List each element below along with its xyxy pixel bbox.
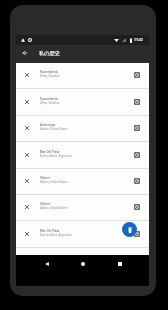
button[interactable]: Remove entry bbox=[16, 89, 149, 115]
button[interactable]: Remove entry bbox=[16, 194, 149, 220]
button[interactable]: Remove entry bbox=[21, 201, 32, 212]
button[interactable]: Time at location bbox=[134, 152, 140, 158]
staticText: 11:22 bbox=[134, 37, 143, 42]
button[interactable]: Time at location bbox=[134, 99, 140, 105]
button[interactable]: Remove entry bbox=[21, 69, 32, 80]
staticText: Zilina, Slovakia bbox=[40, 74, 60, 78]
staticText: Zilina, Slovakia bbox=[40, 101, 60, 105]
staticText: Palmer bbox=[40, 176, 51, 180]
staticText: Ruzomberok bbox=[40, 70, 59, 74]
button[interactable]: Time at location bbox=[134, 125, 140, 131]
staticText: Alaska, United States bbox=[40, 127, 68, 131]
button[interactable]: Remove entry bbox=[21, 122, 32, 133]
button[interactable]: Time at location bbox=[134, 231, 140, 237]
button[interactable]: Remove entry bbox=[16, 168, 149, 194]
button[interactable]: Remove entry bbox=[16, 115, 149, 141]
button[interactable]: Delete all history bbox=[122, 222, 137, 237]
staticText: Ruzomberok bbox=[40, 97, 59, 101]
button[interactable]: Remove entry bbox=[21, 228, 32, 239]
button[interactable]: Remove entry bbox=[21, 96, 32, 107]
button[interactable]: Remove entry bbox=[16, 247, 149, 255]
staticText: Anchorage bbox=[40, 123, 56, 127]
button[interactable]: Home bbox=[77, 258, 88, 269]
staticText: Buenos Aires, Argentina bbox=[40, 233, 72, 237]
button[interactable]: Time at location bbox=[134, 72, 140, 78]
button[interactable]: Back bbox=[19, 47, 31, 59]
staticText: Mar Del Plata bbox=[40, 229, 60, 233]
staticText: Palmer bbox=[40, 202, 51, 206]
button[interactable]: Remove entry bbox=[16, 62, 149, 88]
button[interactable]: Remove entry bbox=[16, 142, 149, 168]
button[interactable]: Remove entry bbox=[16, 221, 149, 247]
staticText: Mar Del Plata bbox=[40, 150, 60, 154]
button[interactable]: Recent apps bbox=[114, 258, 125, 269]
button[interactable]: Remove entry bbox=[21, 149, 32, 160]
button[interactable]: Time at location bbox=[134, 204, 140, 210]
button[interactable]: Remove entry bbox=[21, 175, 32, 186]
staticText: Buenos Aires, Argentina bbox=[40, 154, 72, 158]
button[interactable]: Time at location bbox=[134, 178, 140, 184]
staticText: Alaska, United States bbox=[40, 180, 68, 184]
staticText: 私の歴史 bbox=[39, 50, 60, 57]
staticText: Alaska, United States bbox=[40, 206, 68, 210]
button[interactable]: Back bbox=[41, 258, 52, 269]
